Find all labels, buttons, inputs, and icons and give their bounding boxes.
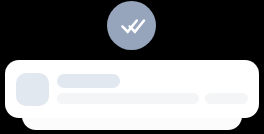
button[interactable]: Message read bbox=[107, 1, 156, 50]
button[interactable] bbox=[5, 60, 259, 118]
